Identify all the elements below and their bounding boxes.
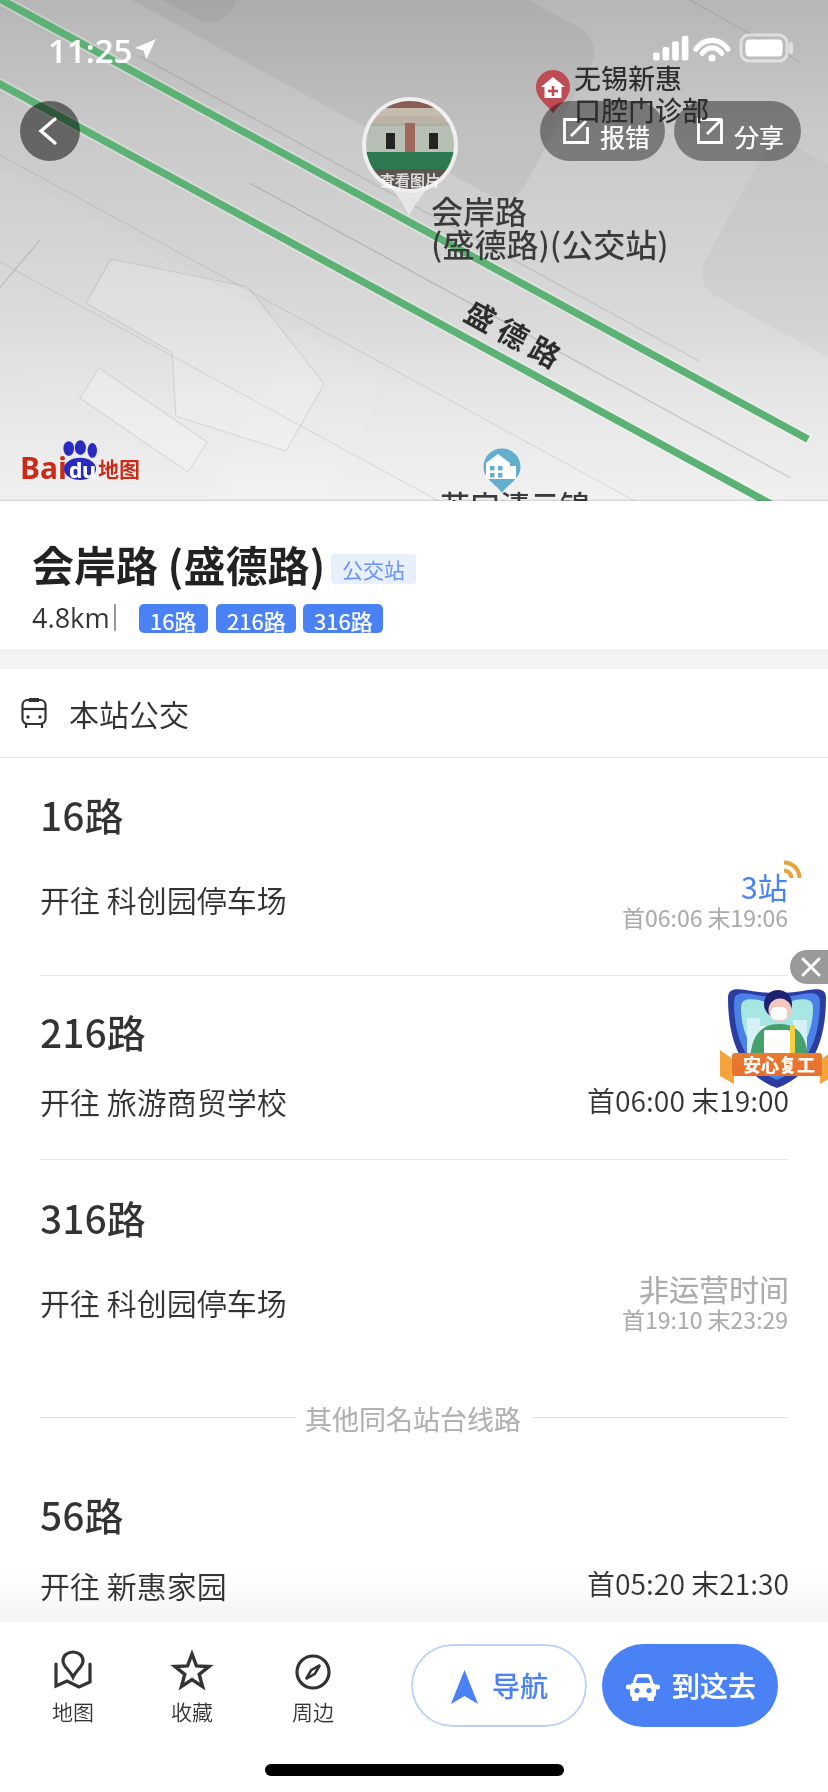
- staticText: du: [69, 456, 96, 485]
- staticText: 周边: [292, 1696, 334, 1726]
- button[interactable]: 无锡新惠口腔门诊部: [534, 68, 572, 116]
- button[interactable]: 到这去: [602, 1644, 778, 1727]
- staticText: 开往 科创园停车场: [40, 1280, 287, 1323]
- staticText: 地图: [98, 453, 140, 483]
- button[interactable]: [0, 1458, 828, 1608]
- staticText: 公交站: [342, 554, 405, 584]
- staticText: 首05:20 末21:30: [587, 1563, 790, 1604]
- staticText: 安心复工: [743, 1051, 815, 1077]
- button[interactable]: Close ad: [790, 950, 828, 984]
- staticText: 11:25: [48, 28, 133, 73]
- button[interactable]: 216路: [216, 604, 296, 633]
- staticText: 查看图片: [380, 169, 441, 191]
- staticText: 导航: [492, 1665, 549, 1706]
- button[interactable]: Advertisement: [728, 986, 828, 1088]
- staticText: 地图: [52, 1696, 94, 1726]
- button[interactable]: 16路: [139, 604, 208, 633]
- staticText: 苏宁清云锦: [440, 482, 590, 525]
- staticText: 316路: [40, 1189, 146, 1245]
- button[interactable]: 分享: [674, 101, 801, 161]
- button[interactable]: 报错: [540, 101, 665, 161]
- staticText: 首06:06 末19:06: [622, 900, 789, 933]
- button[interactable]: 公交站: [331, 554, 416, 584]
- staticText: 首06:00 末19:00: [587, 1080, 790, 1121]
- button[interactable]: 导航: [411, 1644, 587, 1727]
- button[interactable]: [0, 1160, 828, 1380]
- staticText: 会岸路 (盛德路): [32, 533, 326, 594]
- staticText: 4.8km: [32, 599, 110, 636]
- button[interactable]: 地图: [28, 1645, 118, 1725]
- button[interactable]: 会岸路 (盛德路) 公交站照片: [358, 94, 462, 216]
- staticText: 非运营时间: [639, 1266, 789, 1309]
- staticText: 216路: [227, 604, 286, 633]
- button[interactable]: 收藏: [147, 1645, 237, 1725]
- staticText: 16路: [40, 786, 124, 842]
- staticText: 到这去: [672, 1665, 757, 1706]
- button[interactable]: 316路: [303, 604, 383, 633]
- staticText: Bai: [20, 447, 67, 488]
- staticText: 216路: [40, 1003, 146, 1059]
- staticText: 16路: [150, 604, 197, 633]
- staticText: 开往 新惠家园: [40, 1563, 227, 1606]
- staticText: (盛德路)(公交站): [431, 220, 669, 266]
- staticText: 会岸路: [431, 187, 528, 233]
- staticText: 开往 旅游商贸学校: [40, 1079, 287, 1122]
- button[interactable]: [0, 976, 828, 1159]
- staticText: 收藏: [171, 1696, 213, 1726]
- staticText: 3站: [741, 864, 788, 907]
- staticText: 分享: [734, 118, 785, 154]
- staticText: 口腔门诊部: [574, 90, 709, 129]
- staticText: 其他同名站台线路: [305, 1399, 521, 1438]
- button[interactable]: Back: [20, 101, 80, 161]
- staticText: 首19:10 末23:29: [622, 1302, 789, 1335]
- staticText: 无锡新惠: [574, 58, 682, 97]
- button[interactable]: [0, 758, 828, 975]
- staticText: 本站公交: [69, 691, 189, 734]
- staticText: 报错: [600, 118, 651, 154]
- button[interactable]: 周边: [268, 1645, 358, 1725]
- button[interactable]: 苏宁清云锦: [483, 447, 521, 495]
- staticText: 盛 德 路: [458, 288, 570, 376]
- staticText: 316路: [314, 604, 373, 633]
- staticText: 开往 科创园停车场: [40, 877, 287, 920]
- staticText: 56路: [40, 1486, 124, 1542]
